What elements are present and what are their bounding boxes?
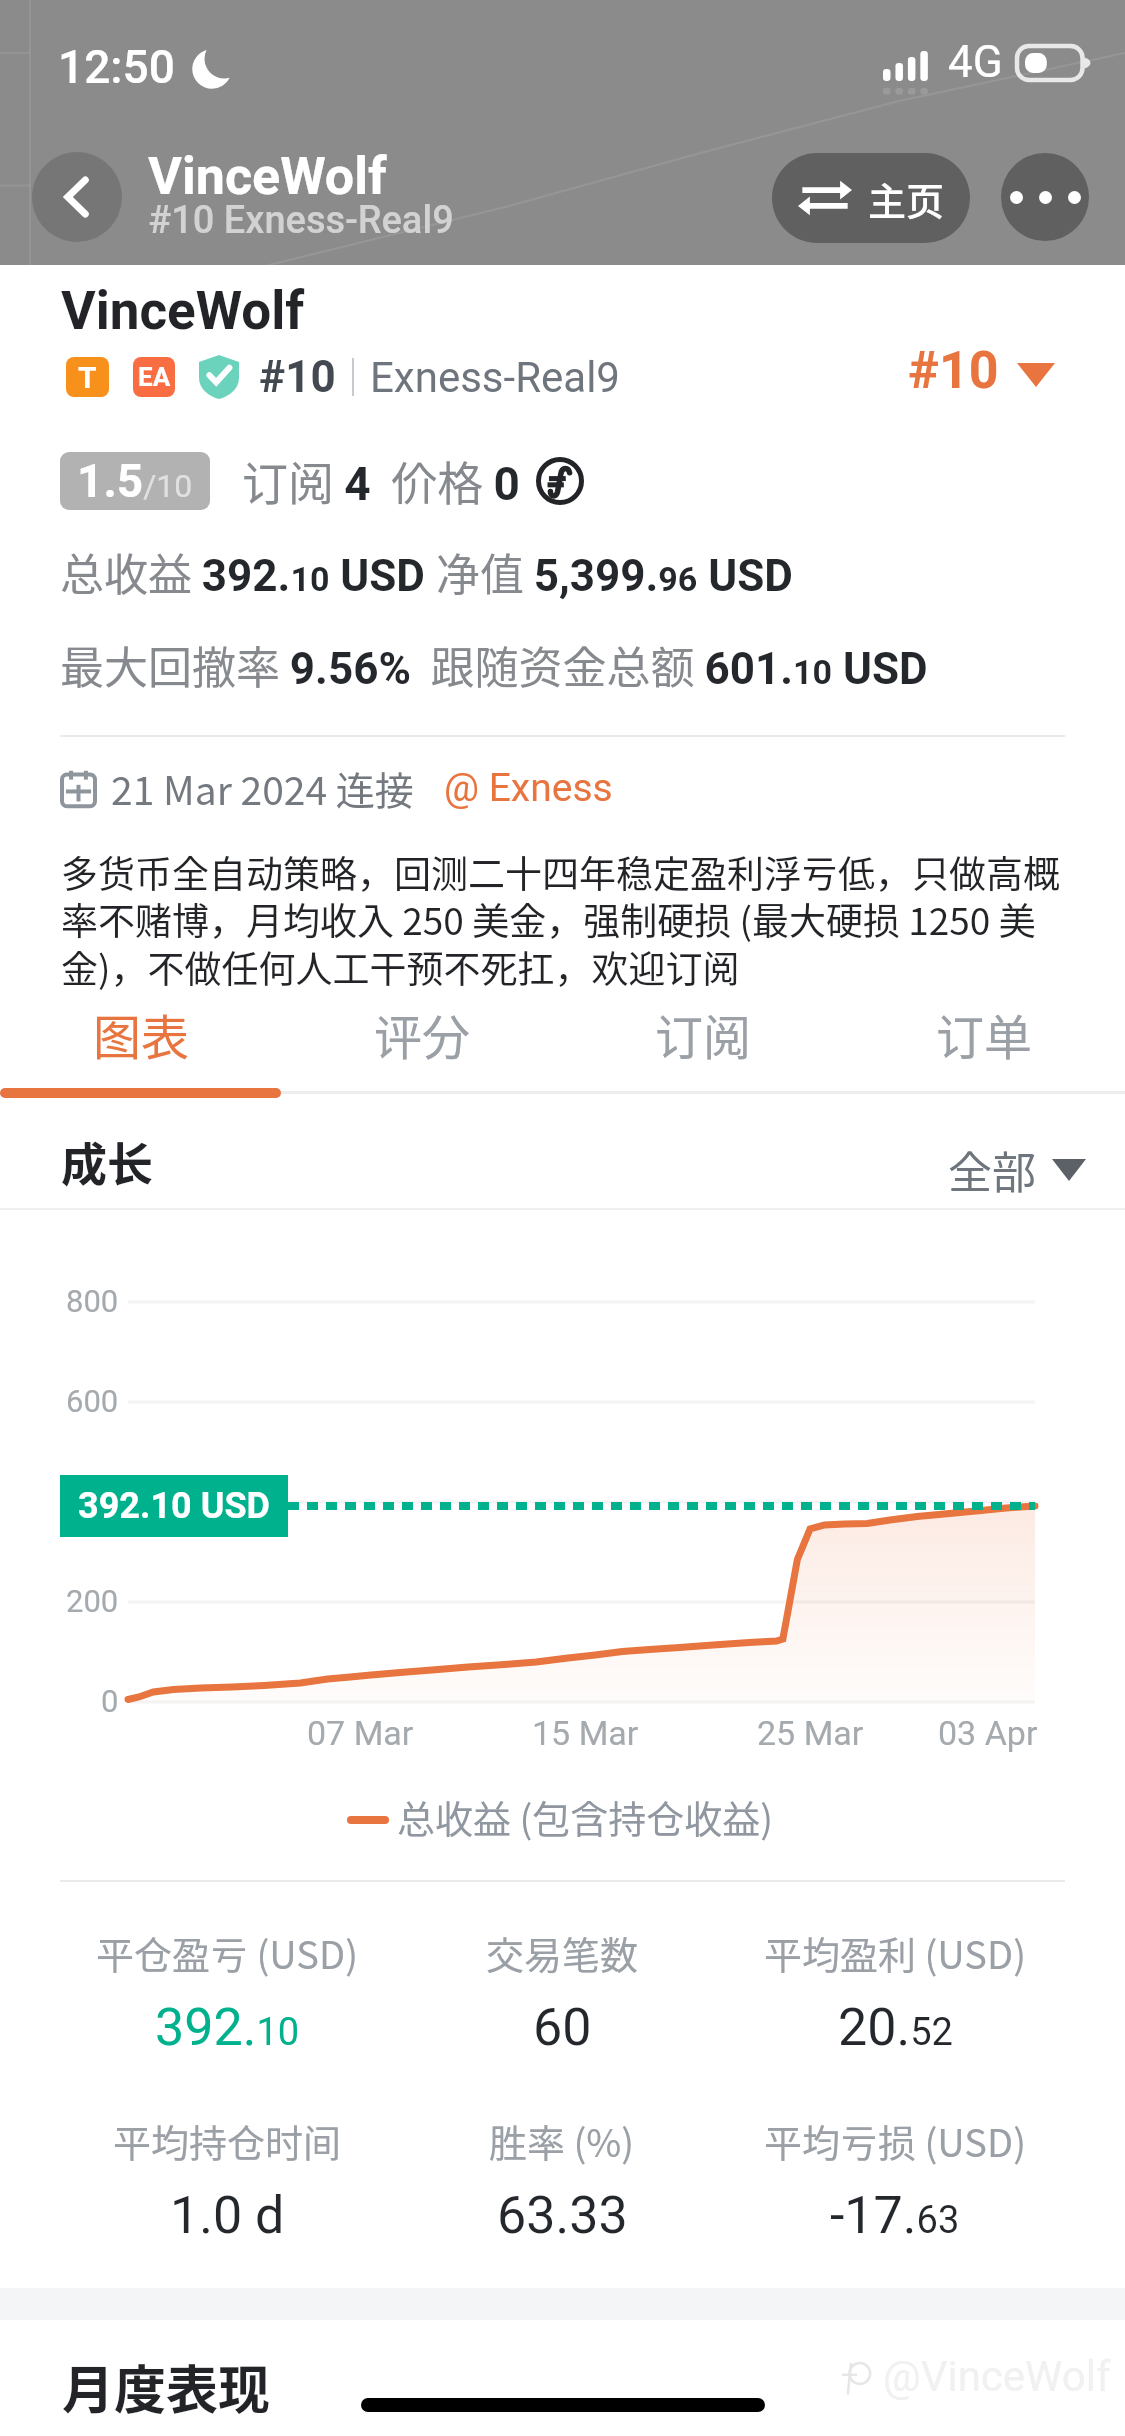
- staticText: 订阅: [655, 999, 752, 1069]
- staticText: 交易笔数: [486, 1925, 639, 1980]
- button[interactable]: #10: [908, 340, 1055, 401]
- staticText: 平仓盈亏 (USD): [96, 1925, 358, 1980]
- staticText: 评分: [374, 999, 471, 1069]
- staticText: @VinceWolf: [883, 2352, 1111, 2401]
- button[interactable]: 订阅: [563, 986, 844, 1082]
- staticText: 15 Mar: [532, 1713, 639, 1753]
- button[interactable]: @ Exness: [444, 765, 613, 811]
- button[interactable]: 评分: [282, 986, 563, 1082]
- staticText: 200: [66, 1583, 119, 1619]
- staticText: 主页: [868, 171, 945, 226]
- staticText: 1.5/10: [77, 454, 193, 508]
- staticText: 392.10 USD: [78, 1485, 270, 1527]
- staticText: 12:50: [58, 40, 175, 94]
- staticText: 07 Mar: [307, 1713, 414, 1753]
- staticText: 03 Apr: [938, 1713, 1038, 1753]
- staticText: 月度表现: [62, 2349, 271, 2424]
- staticText: 20.52: [838, 1997, 953, 2058]
- staticText: VinceWolf: [148, 146, 387, 207]
- staticText: 图表: [93, 999, 190, 1069]
- button[interactable]: 图表: [0, 986, 282, 1082]
- staticText: 总收益 392.10 USD 净值 5,399.96 USD: [60, 540, 793, 604]
- button[interactable]: 全部: [948, 1138, 1086, 1202]
- staticText: 成长: [61, 1128, 153, 1195]
- button[interactable]: 主页: [772, 153, 970, 243]
- staticText: 最大回撤率 9.56% 跟随资金总额 601.10 USD: [60, 633, 928, 697]
- staticText: EA: [138, 362, 171, 392]
- staticText: 600: [66, 1383, 119, 1419]
- staticText: #10: [908, 340, 999, 401]
- button[interactable]: More options: [1001, 153, 1089, 241]
- staticText: #10: [259, 351, 336, 403]
- staticText: 总收益 (包含持仓收益): [397, 1789, 774, 1844]
- staticText: T: [78, 360, 97, 395]
- button[interactable]: 订单: [844, 986, 1125, 1082]
- staticText: 胜率 (%): [489, 2113, 635, 2168]
- staticText: VinceWolf: [61, 280, 305, 342]
- staticText: 21 Mar 2024 连接: [111, 760, 414, 816]
- staticText: 63.33: [497, 2185, 628, 2246]
- staticText: 4G: [948, 36, 1003, 88]
- staticText: 平均盈利 (USD): [764, 1925, 1026, 1980]
- staticText: 平均亏损 (USD): [764, 2113, 1026, 2168]
- staticText: 25 Mar: [757, 1713, 864, 1753]
- staticText: 订单: [936, 999, 1033, 1069]
- staticText: 平均持仓时间: [113, 2113, 342, 2168]
- staticText: 0: [101, 1683, 119, 1719]
- staticText: 订阅 4 价格 0: [242, 447, 520, 514]
- staticText: Exness-Real9: [370, 353, 620, 402]
- staticText: 1.0 d: [170, 2185, 285, 2246]
- staticText: 全部: [948, 1138, 1036, 1202]
- staticText: 多货币全自动策略，回测二十四年稳定盈利浮亏低，只做高概 率不赌博，月均收入 25…: [61, 845, 1060, 994]
- staticText: -17.63: [830, 2185, 960, 2246]
- staticText: 60: [533, 1997, 592, 2058]
- staticText: 392.10: [155, 1997, 300, 2058]
- staticText: #10 Exness-Real9: [148, 198, 454, 243]
- staticText: 800: [66, 1283, 119, 1319]
- button[interactable]: Back: [32, 152, 122, 242]
